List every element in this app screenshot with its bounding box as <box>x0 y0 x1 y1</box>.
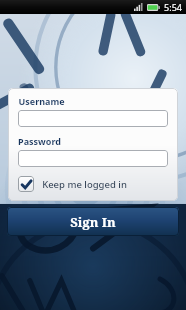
staticText: Password <box>18 135 61 147</box>
staticText: Sign In <box>70 213 116 231</box>
staticText: 5:54 <box>164 1 182 13</box>
staticText: Keep me logged in <box>42 178 127 191</box>
button[interactable]: Text input <box>18 110 168 127</box>
button[interactable]: Text input <box>18 150 168 167</box>
staticText: Username <box>18 95 65 107</box>
button[interactable]: Sign In <box>7 207 179 236</box>
button[interactable]: Keep me logged in checkbox, checked <box>18 176 168 192</box>
other: Keep me logged in checkbox, checked <box>18 176 34 192</box>
